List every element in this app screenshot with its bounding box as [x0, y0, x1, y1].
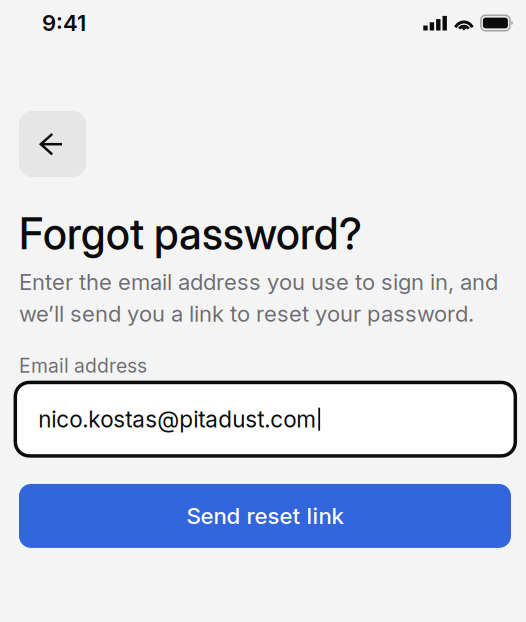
staticText: nico.kostas@pitadust.com: [38, 405, 316, 433]
button[interactable]: Back: [19, 111, 86, 177]
staticText: 9:41: [42, 10, 86, 36]
staticText: Send reset link: [186, 502, 343, 529]
staticText: Email address: [19, 354, 147, 377]
staticText: Enter the email address you use to sign …: [19, 268, 498, 327]
staticText: Forgot password?: [19, 208, 362, 259]
button[interactable]: Send reset link: [19, 484, 511, 548]
